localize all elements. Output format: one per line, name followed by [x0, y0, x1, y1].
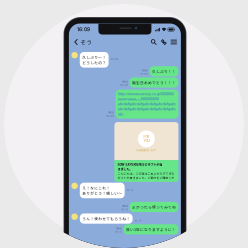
staticText: 16:09 — [77, 27, 90, 32]
staticText: え！なにこれ！ — [82, 185, 110, 190]
button[interactable]: Menu — [169, 39, 177, 45]
staticText: ギフトが届きました。ご案内をご確認くだ — [117, 176, 174, 180]
staticText: abcdefgabcdefgabcdefgabcdefgabc — [118, 107, 176, 111]
staticText: きました。 — [117, 167, 132, 171]
staticText: 既読 — [108, 110, 114, 114]
staticText: SOW EXPERIENCEのギフトが届 — [117, 162, 162, 167]
staticText: 16:08 — [120, 83, 128, 87]
staticText: aaaacaaaa=-=000000000 — [118, 97, 159, 101]
staticText: abc — [118, 112, 124, 116]
staticText: 16:09 — [106, 114, 114, 118]
staticText: 既読 — [122, 204, 128, 208]
staticText: FOR — [143, 135, 149, 139]
staticText: 久しぶり！！ — [152, 69, 176, 74]
staticText: 16:13 — [121, 208, 128, 211]
staticText: どうしたの？ — [82, 60, 106, 65]
staticText: うん！使わせてもらうね！ — [82, 216, 130, 221]
staticText: 既読 — [122, 79, 128, 83]
staticText: 16:15 — [115, 230, 122, 233]
staticText: 久しぶりー！ — [82, 54, 106, 60]
button[interactable]: そう — [79, 38, 93, 46]
staticText: 16:06 — [111, 57, 119, 61]
staticText: https://www.sowexp.co.jp/000000/ — [118, 92, 174, 96]
staticText: 16:08 — [140, 72, 148, 75]
staticText: ありがとう！嬉しい～ — [82, 190, 122, 196]
button[interactable]: Search — [149, 39, 159, 45]
staticText: 誕生日おめでとう！！！ — [132, 80, 176, 85]
staticText: そう — [80, 38, 92, 46]
staticText: YOU — [143, 139, 149, 143]
staticText: 既読 — [142, 68, 148, 72]
staticText: 16:14 — [135, 219, 142, 222]
staticText: よかったら使ってみてね — [132, 204, 176, 210]
staticText: REMEMBER GIFT — [136, 149, 156, 152]
staticText: 16:12 — [127, 188, 134, 191]
staticText: abcdefgabcdefgabcdefgabcdefgabc — [118, 102, 176, 106]
staticText: 良い1年になりますように！ — [126, 227, 176, 232]
button[interactable]: Call — [159, 39, 169, 45]
button[interactable]: Back — [73, 37, 79, 47]
staticText: 既読 — [116, 226, 122, 230]
staticText: こんにちは。この度はご友人からすてきな — [117, 171, 174, 176]
